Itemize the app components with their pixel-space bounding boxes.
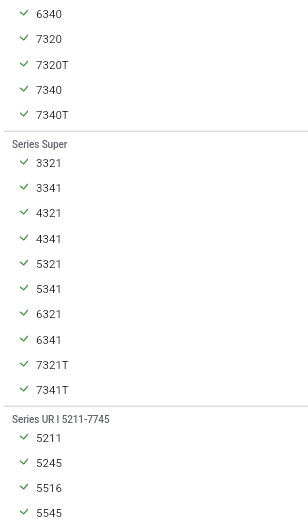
staticText: 5516 [36, 481, 62, 494]
button[interactable]: Selected [0, 377, 308, 402]
button[interactable]: Selected [0, 251, 308, 276]
button[interactable]: Selected [0, 175, 308, 200]
other: Selected [20, 184, 28, 190]
staticText: 6340 [36, 7, 62, 20]
button[interactable]: Selected [0, 475, 308, 500]
button[interactable]: Selected [0, 301, 308, 326]
staticText: 3341 [36, 181, 62, 194]
staticText: 7340T [36, 108, 69, 121]
staticText: 7320 [36, 32, 62, 45]
staticText: 6321 [36, 307, 62, 320]
other: Selected [20, 61, 28, 67]
staticText: 4341 [36, 232, 62, 245]
button[interactable]: Selected [0, 327, 308, 352]
button[interactable]: Selected [0, 200, 308, 225]
staticText: 5321 [36, 257, 62, 270]
staticText: 5211 [36, 431, 62, 444]
button[interactable]: Selected [0, 150, 308, 175]
staticText: Series Super [12, 139, 68, 151]
staticText: Series UR I 5211-7745 [12, 414, 110, 426]
button[interactable]: Selected [0, 102, 308, 127]
other: Selected [20, 235, 28, 241]
other: Selected [20, 484, 28, 490]
other: Selected [20, 285, 28, 291]
other: Selected [20, 336, 28, 342]
staticText: 5245 [36, 456, 62, 469]
other: Selected [20, 434, 28, 440]
staticText: 7320T [36, 58, 69, 71]
button[interactable]: Selected [0, 425, 308, 450]
staticText: 3321 [36, 156, 62, 169]
button[interactable]: Selected [0, 276, 308, 301]
other: Selected [20, 459, 28, 465]
button[interactable]: Selected [0, 450, 308, 475]
other: Selected [20, 509, 28, 515]
button[interactable]: Selected [0, 500, 308, 525]
other: Selected [20, 310, 28, 316]
staticText: 4321 [36, 206, 62, 219]
other: Selected [20, 111, 28, 117]
button[interactable]: Selected [0, 352, 308, 377]
other: Selected [20, 386, 28, 392]
other: Selected [20, 361, 28, 367]
other: Selected [20, 35, 28, 41]
other: Selected [20, 209, 28, 215]
button[interactable]: Selected [0, 1, 308, 26]
button[interactable]: Selected [0, 26, 308, 51]
staticText: 7321T [36, 358, 69, 371]
other: Selected [20, 86, 28, 92]
staticText: 5341 [36, 282, 62, 295]
button[interactable]: Selected [0, 226, 308, 251]
other: Selected [20, 260, 28, 266]
other: Selected [20, 10, 28, 16]
staticText: 7340 [36, 83, 62, 96]
button[interactable]: Selected [0, 77, 308, 102]
staticText: 5545 [36, 506, 62, 519]
staticText: 7341T [36, 383, 69, 396]
other: Selected [20, 159, 28, 165]
button[interactable]: Selected [0, 52, 308, 77]
staticText: 6341 [36, 333, 62, 346]
